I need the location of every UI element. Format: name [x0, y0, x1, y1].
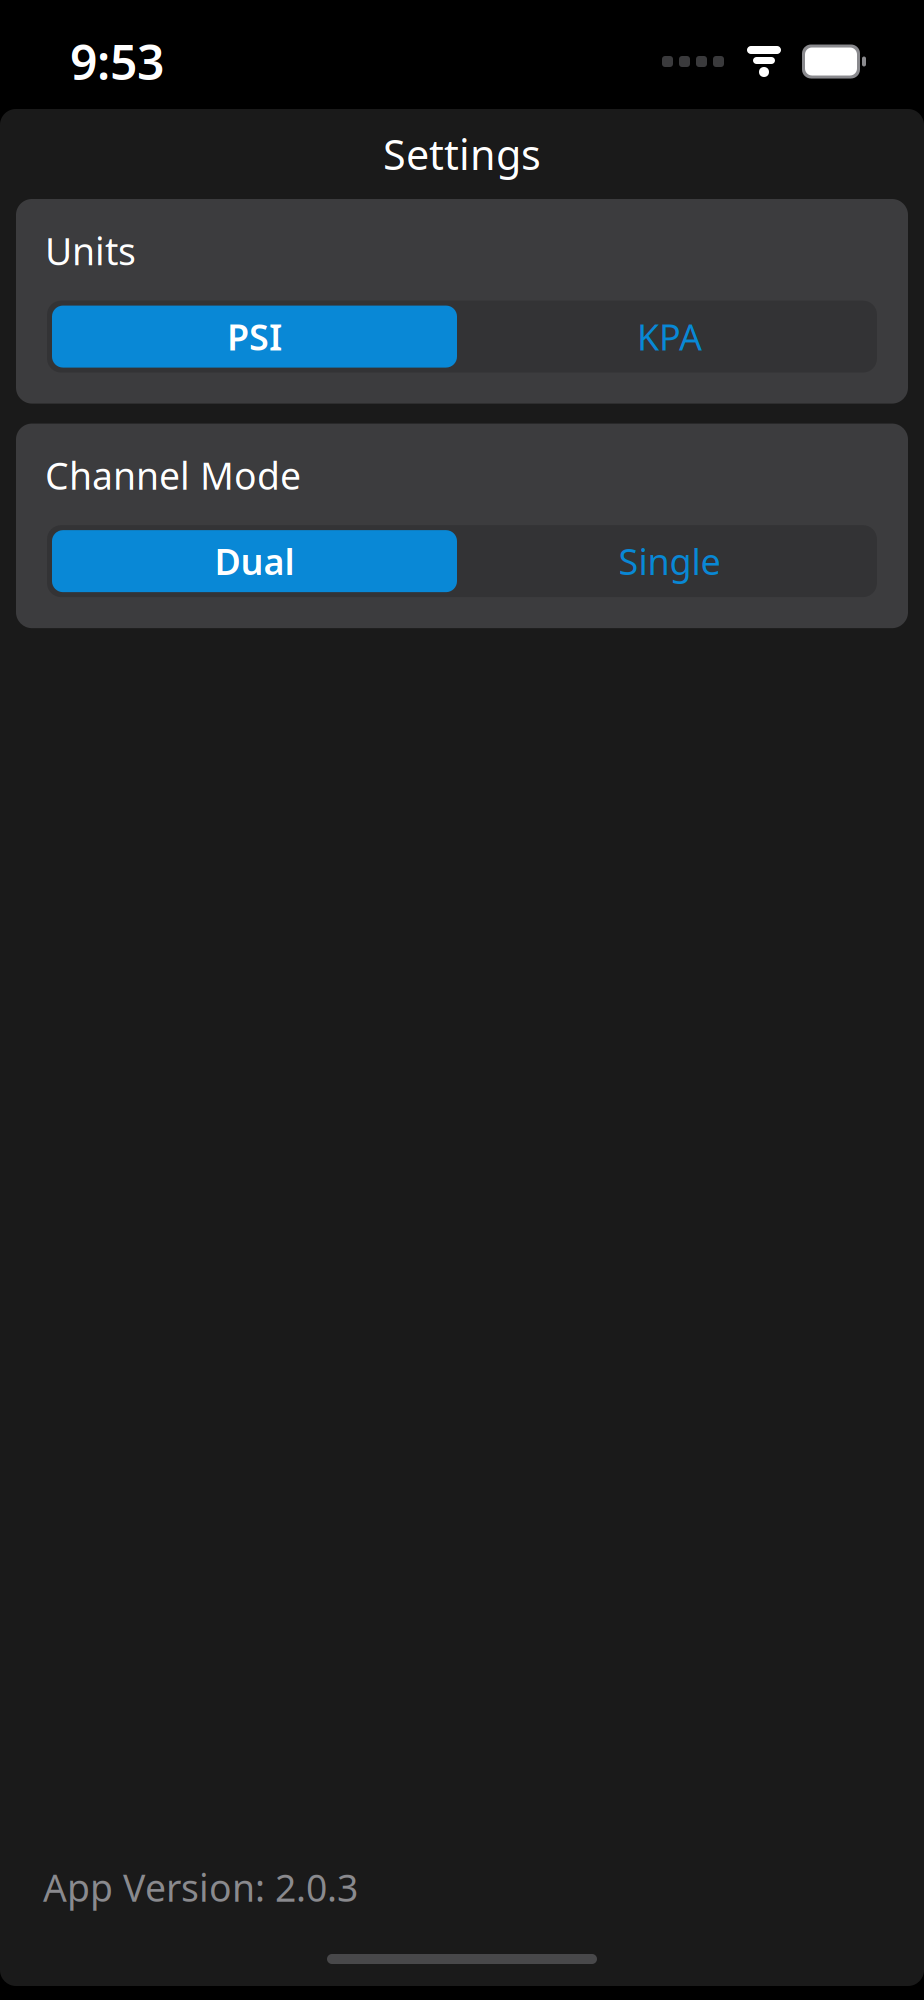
staticText: KPA — [637, 313, 702, 360]
staticText: 9:53 — [70, 30, 164, 93]
staticText: Units — [45, 226, 136, 276]
button[interactable]: Dual — [47, 525, 462, 597]
staticText: PSI — [227, 313, 282, 360]
staticText: App Version: 2.0.3 — [43, 1862, 358, 1912]
staticText: Single — [618, 537, 720, 585]
staticText: Settings — [383, 127, 541, 181]
button[interactable]: KPA — [462, 301, 877, 373]
button[interactable]: Single — [462, 525, 877, 597]
staticText: Channel Mode — [45, 451, 301, 500]
button[interactable]: PSI — [47, 301, 462, 373]
staticText: Dual — [214, 537, 294, 585]
